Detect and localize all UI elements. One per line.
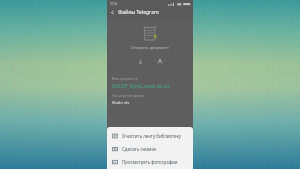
button[interactable]: Back: [107, 7, 118, 18]
staticText: Просмотреть фотографии: [122, 159, 178, 165]
staticText: Файлы Telegram: [118, 9, 159, 16]
staticText: Сделать снимок: [122, 146, 157, 152]
staticText: Расширение файла: [112, 93, 144, 98]
button[interactable]: Download: [135, 56, 145, 66]
staticText: Файл xls: [112, 100, 130, 106]
button[interactable]: Просмотреть фотографии: [107, 155, 193, 168]
staticText: Очистить ленту библиотеку: [122, 133, 182, 139]
button[interactable]: Очистить ленту библиотеку: [107, 129, 193, 142]
staticText: Открыть документ: [131, 45, 169, 51]
button[interactable]: Сделать снимок: [107, 142, 193, 155]
staticText: 17:4: [110, 1, 117, 6]
staticText: Имя документа: [112, 76, 138, 81]
button[interactable]: Share: [155, 56, 165, 66]
staticText: 8LDZIP_fight2.small.xls.xls: [112, 83, 170, 89]
